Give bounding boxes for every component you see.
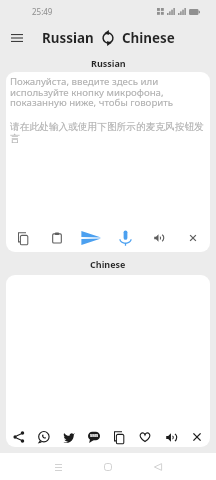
button[interactable]: Copy <box>106 427 132 447</box>
staticText: Russian <box>91 57 126 69</box>
staticText: 请在此处输入或使用下图所示的麦克风按钮发言 <box>10 121 210 145</box>
button[interactable]: Chinese <box>122 29 175 47</box>
button[interactable]: Microphone <box>108 224 142 252</box>
button[interactable]: Back <box>146 455 170 479</box>
button[interactable]: Close <box>184 427 210 447</box>
button[interactable]: Home <box>96 455 120 479</box>
button[interactable]: Favourite <box>132 427 158 447</box>
button[interactable]: Send <box>74 224 108 252</box>
button[interactable]: Copy <box>6 224 40 252</box>
button[interactable]: Menu <box>6 27 28 49</box>
staticText: Пожалуйста, введите здесь или используйт… <box>10 75 188 109</box>
button[interactable]: Speak <box>158 427 184 447</box>
button[interactable]: WhatsApp <box>31 427 56 447</box>
button[interactable]: Swap languages <box>102 32 114 44</box>
staticText: Chinese <box>90 258 126 270</box>
button[interactable]: Paste <box>40 224 74 252</box>
button[interactable]: SMS <box>81 427 106 447</box>
button[interactable]: Clear <box>176 224 210 252</box>
button[interactable]: Recents <box>46 455 70 479</box>
button[interactable]: Share <box>6 427 31 447</box>
staticText: SMS <box>90 433 99 438</box>
button[interactable]: Russian <box>42 29 94 47</box>
button[interactable]: Speak <box>142 224 176 252</box>
staticText: 25:49 <box>32 6 53 17</box>
button[interactable]: Twitter <box>56 427 81 447</box>
